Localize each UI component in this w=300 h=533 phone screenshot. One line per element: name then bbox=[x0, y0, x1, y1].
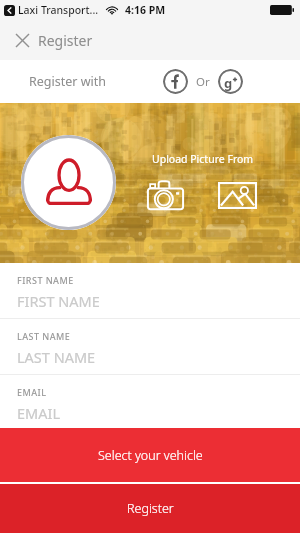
button[interactable]: LAST NAME bbox=[0, 319, 300, 375]
staticText: Laxi Transport... bbox=[18, 3, 99, 17]
staticText: LAST NAME bbox=[17, 347, 96, 367]
staticText: 4:16 PM bbox=[125, 3, 166, 17]
button[interactable]: Profile picture bbox=[21, 135, 116, 230]
button[interactable]: Register with Facebook bbox=[163, 69, 188, 94]
staticText: EMAIL bbox=[17, 403, 60, 423]
button[interactable]: Select your vehicle bbox=[0, 428, 300, 482]
button[interactable]: FIRST NAME bbox=[0, 263, 300, 319]
button[interactable]: Take photo with camera bbox=[140, 174, 190, 216]
staticText: Upload Picture From bbox=[152, 152, 254, 166]
staticText: FIRST NAME bbox=[17, 291, 100, 311]
button[interactable]: Choose from gallery bbox=[211, 177, 263, 213]
staticText: FIRST NAME bbox=[17, 274, 74, 286]
button[interactable]: Register with Google Plus bbox=[218, 69, 243, 94]
staticText: Register bbox=[127, 500, 174, 517]
staticText: Select your vehicle bbox=[98, 447, 203, 464]
staticText: EMAIL bbox=[17, 386, 47, 398]
button[interactable]: EMAIL bbox=[0, 375, 300, 428]
button[interactable]: Close bbox=[10, 28, 34, 52]
button[interactable]: Register bbox=[0, 484, 300, 533]
staticText: LAST NAME bbox=[17, 330, 71, 342]
staticText: Register bbox=[38, 31, 93, 50]
staticText: g bbox=[224, 74, 233, 92]
staticText: Or bbox=[196, 74, 210, 90]
staticText: Register with bbox=[29, 73, 106, 90]
